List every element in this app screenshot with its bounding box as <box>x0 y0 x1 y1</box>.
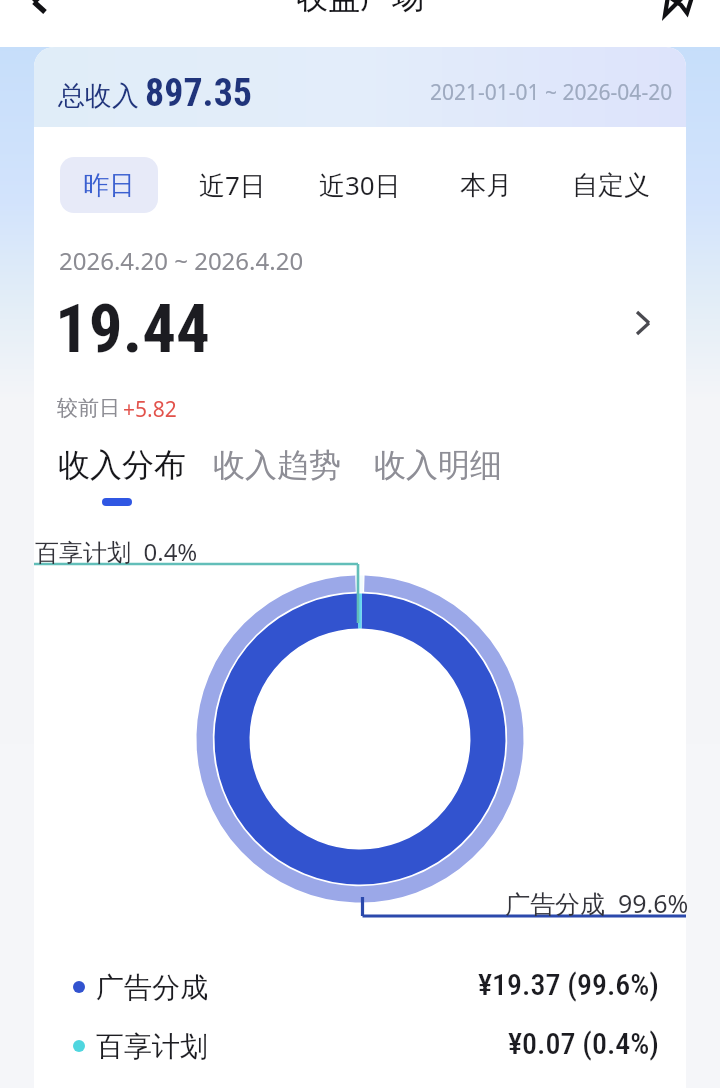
staticText: 2021-01-01 ~ 2026-04-20 <box>430 78 673 107</box>
staticText: 2026.4.20 ~ 2026.4.20 <box>59 244 304 277</box>
staticText: 总收入 <box>58 79 139 113</box>
staticText: ¥19.37 (99.6%) <box>478 967 659 1002</box>
staticText: 广告分成 <box>96 970 208 1005</box>
button[interactable]: Detail <box>620 300 666 346</box>
staticText: 昨日 <box>83 169 135 202</box>
staticText: 897.35 <box>145 71 253 116</box>
button[interactable]: 近30日 <box>313 157 407 213</box>
staticText: ¥0.07 (0.4%) <box>508 1026 659 1061</box>
button[interactable]: 百享计划 <box>34 1017 686 1075</box>
button[interactable]: 本月 <box>439 157 533 213</box>
button[interactable]: 收入分布 <box>58 445 186 507</box>
button[interactable]: 近7日 <box>185 157 279 213</box>
staticText: 收入明细 <box>374 445 502 485</box>
staticText: +5.82 <box>123 395 177 424</box>
staticText: 百享计划 <box>96 1029 208 1064</box>
button[interactable]: Share <box>654 0 706 17</box>
staticText: 百享计划 0.4% <box>35 535 198 568</box>
button[interactable]: Back <box>12 0 60 23</box>
staticText: 收入趋势 <box>213 445 341 485</box>
staticText: 收益广场 <box>296 0 424 17</box>
button[interactable]: 广告分成 <box>34 958 686 1016</box>
staticText: 广告分成 99.6% <box>505 886 689 920</box>
staticText: 收入分布 <box>58 445 186 485</box>
button[interactable]: 自定义 <box>564 157 658 213</box>
button[interactable]: 收入趋势 <box>213 445 341 507</box>
staticText: 近7日 <box>199 167 266 203</box>
staticText: 本月 <box>460 169 512 202</box>
staticText: 自定义 <box>572 169 650 202</box>
staticText: 较前日 <box>57 395 120 421</box>
staticText: 19.44 <box>55 290 210 369</box>
staticText: 近30日 <box>319 167 401 203</box>
button[interactable]: 昨日 <box>60 157 158 213</box>
button[interactable]: 收入明细 <box>374 445 502 507</box>
